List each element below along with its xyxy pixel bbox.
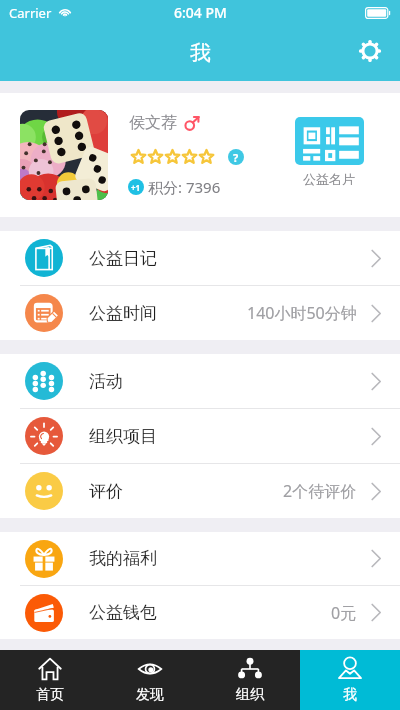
staticText: Carrier bbox=[9, 4, 52, 22]
staticText: 2个待评价 bbox=[283, 480, 357, 502]
staticText: 公益时间 bbox=[89, 303, 157, 324]
staticText: 侯文荐 bbox=[129, 113, 177, 133]
staticText: 我 bbox=[190, 40, 211, 66]
staticText: 评价 bbox=[89, 481, 123, 502]
staticText: 0元 bbox=[331, 602, 357, 624]
button[interactable]: 公益名片 bbox=[290, 117, 368, 187]
staticText: 活动 bbox=[89, 371, 123, 392]
button[interactable]: 组织 bbox=[200, 650, 300, 710]
button[interactable]: 首页 bbox=[0, 650, 100, 710]
button[interactable]: Avatar bbox=[20, 110, 108, 200]
button[interactable]: 活动 bbox=[0, 354, 400, 408]
staticText: 140小时50分钟 bbox=[247, 302, 357, 324]
button[interactable]: 公益时间 bbox=[0, 286, 400, 340]
staticText: 组织 bbox=[236, 686, 264, 704]
button[interactable]: Help bbox=[228, 149, 244, 165]
staticText: ? bbox=[233, 150, 239, 165]
staticText: 组织项目 bbox=[89, 426, 157, 447]
staticText: 公益日记 bbox=[89, 248, 157, 269]
button[interactable]: 公益日记 bbox=[0, 231, 400, 285]
staticText: +1 bbox=[131, 182, 141, 193]
staticText: 公益名片 bbox=[303, 171, 355, 187]
staticText: 我 bbox=[343, 686, 357, 704]
staticText: 发现 bbox=[136, 686, 164, 704]
button[interactable]: 公益钱包 bbox=[0, 586, 400, 639]
staticText: 首页 bbox=[36, 686, 64, 704]
staticText: 6:04 PM bbox=[174, 3, 227, 22]
staticText: 我的福利 bbox=[89, 548, 157, 569]
button[interactable]: Settings bbox=[348, 29, 392, 73]
button[interactable]: 发现 bbox=[100, 650, 200, 710]
button[interactable]: 我的福利 bbox=[0, 532, 400, 585]
button[interactable]: 组织项目 bbox=[0, 409, 400, 463]
button[interactable]: 我 bbox=[300, 650, 400, 710]
staticText: 积分: 7396 bbox=[148, 177, 221, 197]
button[interactable]: 评价 bbox=[0, 464, 400, 518]
staticText: 公益钱包 bbox=[89, 602, 157, 623]
